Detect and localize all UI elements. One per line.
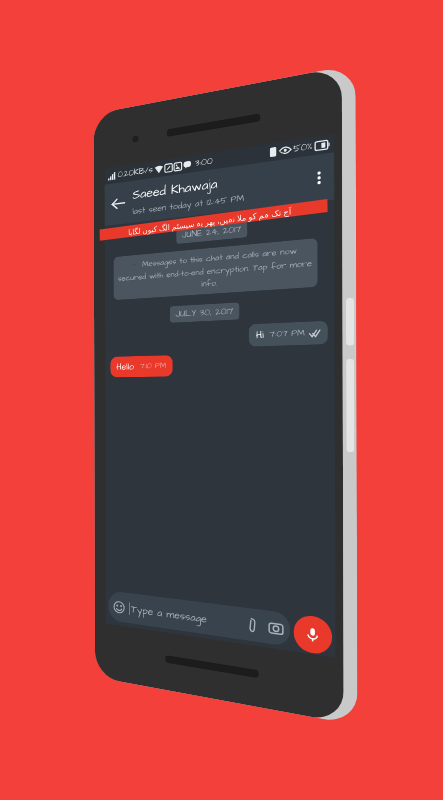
staticText: 3:00: [195, 154, 213, 170]
staticText: Saeed Khawaja: [132, 175, 218, 205]
staticText: 0.20KB/s: [117, 163, 153, 181]
staticText: 7:07 PM: [269, 327, 306, 341]
staticText: 7:10 PM: [140, 360, 166, 372]
staticText: JULY 30, 2017: [175, 305, 233, 321]
staticText: last seen today at 12:45 PM: [132, 192, 244, 218]
staticText: Type a message: [131, 602, 208, 627]
button[interactable]: Hello: [110, 355, 173, 377]
button[interactable]: Hi: [249, 321, 328, 347]
staticText: JUNE 24, 2017: [182, 222, 241, 242]
staticText: ▪ Messages to this chat and calls are no…: [117, 244, 313, 295]
staticText: Hello: [116, 360, 135, 374]
button[interactable]: More options: [306, 153, 331, 203]
button[interactable]: Camera: [267, 619, 284, 638]
staticText: آج تک ہم کو ملا نہیں، پھر یہ سیسٹم الگ ک…: [128, 205, 291, 237]
button[interactable]: ▪ Messages to this chat and calls are no…: [113, 238, 318, 300]
button[interactable]: Attach file: [244, 616, 261, 634]
button[interactable]: Back: [105, 181, 131, 226]
staticText: Hi: [256, 328, 264, 342]
staticText: 50%: [293, 139, 313, 156]
button[interactable]: Record voice message: [293, 614, 332, 656]
button[interactable]: Type a message: [108, 590, 290, 647]
